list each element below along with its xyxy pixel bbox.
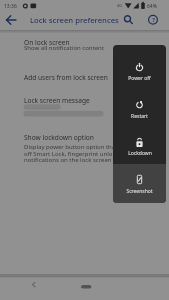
staticText: Screenshot [126, 188, 153, 195]
staticText: Power off [128, 75, 151, 82]
staticText: Lock screen message [24, 96, 90, 105]
staticText: Restart [131, 113, 148, 120]
button[interactable] [113, 87, 166, 125]
button[interactable] [113, 49, 166, 87]
staticText: Display power button option that will tu… [24, 143, 142, 151]
button[interactable] [118, 10, 138, 30]
button[interactable] [0, 88, 169, 124]
button[interactable] [2, 10, 22, 30]
staticText: notifications on the lock screen [24, 156, 112, 164]
staticText: 13:36 [4, 3, 17, 10]
staticText: Lockdown [128, 150, 152, 157]
staticText: Show all notification content [24, 44, 104, 52]
button[interactable] [113, 124, 166, 162]
button[interactable] [0, 33, 169, 58]
staticText: ? [152, 16, 155, 23]
staticText: Show lockdown option [24, 133, 94, 142]
staticText: Add users from lock screen [24, 73, 108, 82]
staticText: Lock screen preferences [30, 15, 119, 25]
button[interactable] [74, 277, 98, 297]
button[interactable] [24, 277, 44, 297]
staticText: On lock screen [24, 38, 70, 47]
staticText: off Smart Lock, fingerprint unlocking, a… [24, 150, 142, 158]
staticText: 64% [147, 3, 157, 10]
button[interactable] [113, 162, 166, 200]
button[interactable] [0, 63, 169, 88]
button[interactable] [0, 128, 169, 168]
button[interactable] [143, 10, 163, 30]
staticText: 4G [117, 3, 122, 8]
